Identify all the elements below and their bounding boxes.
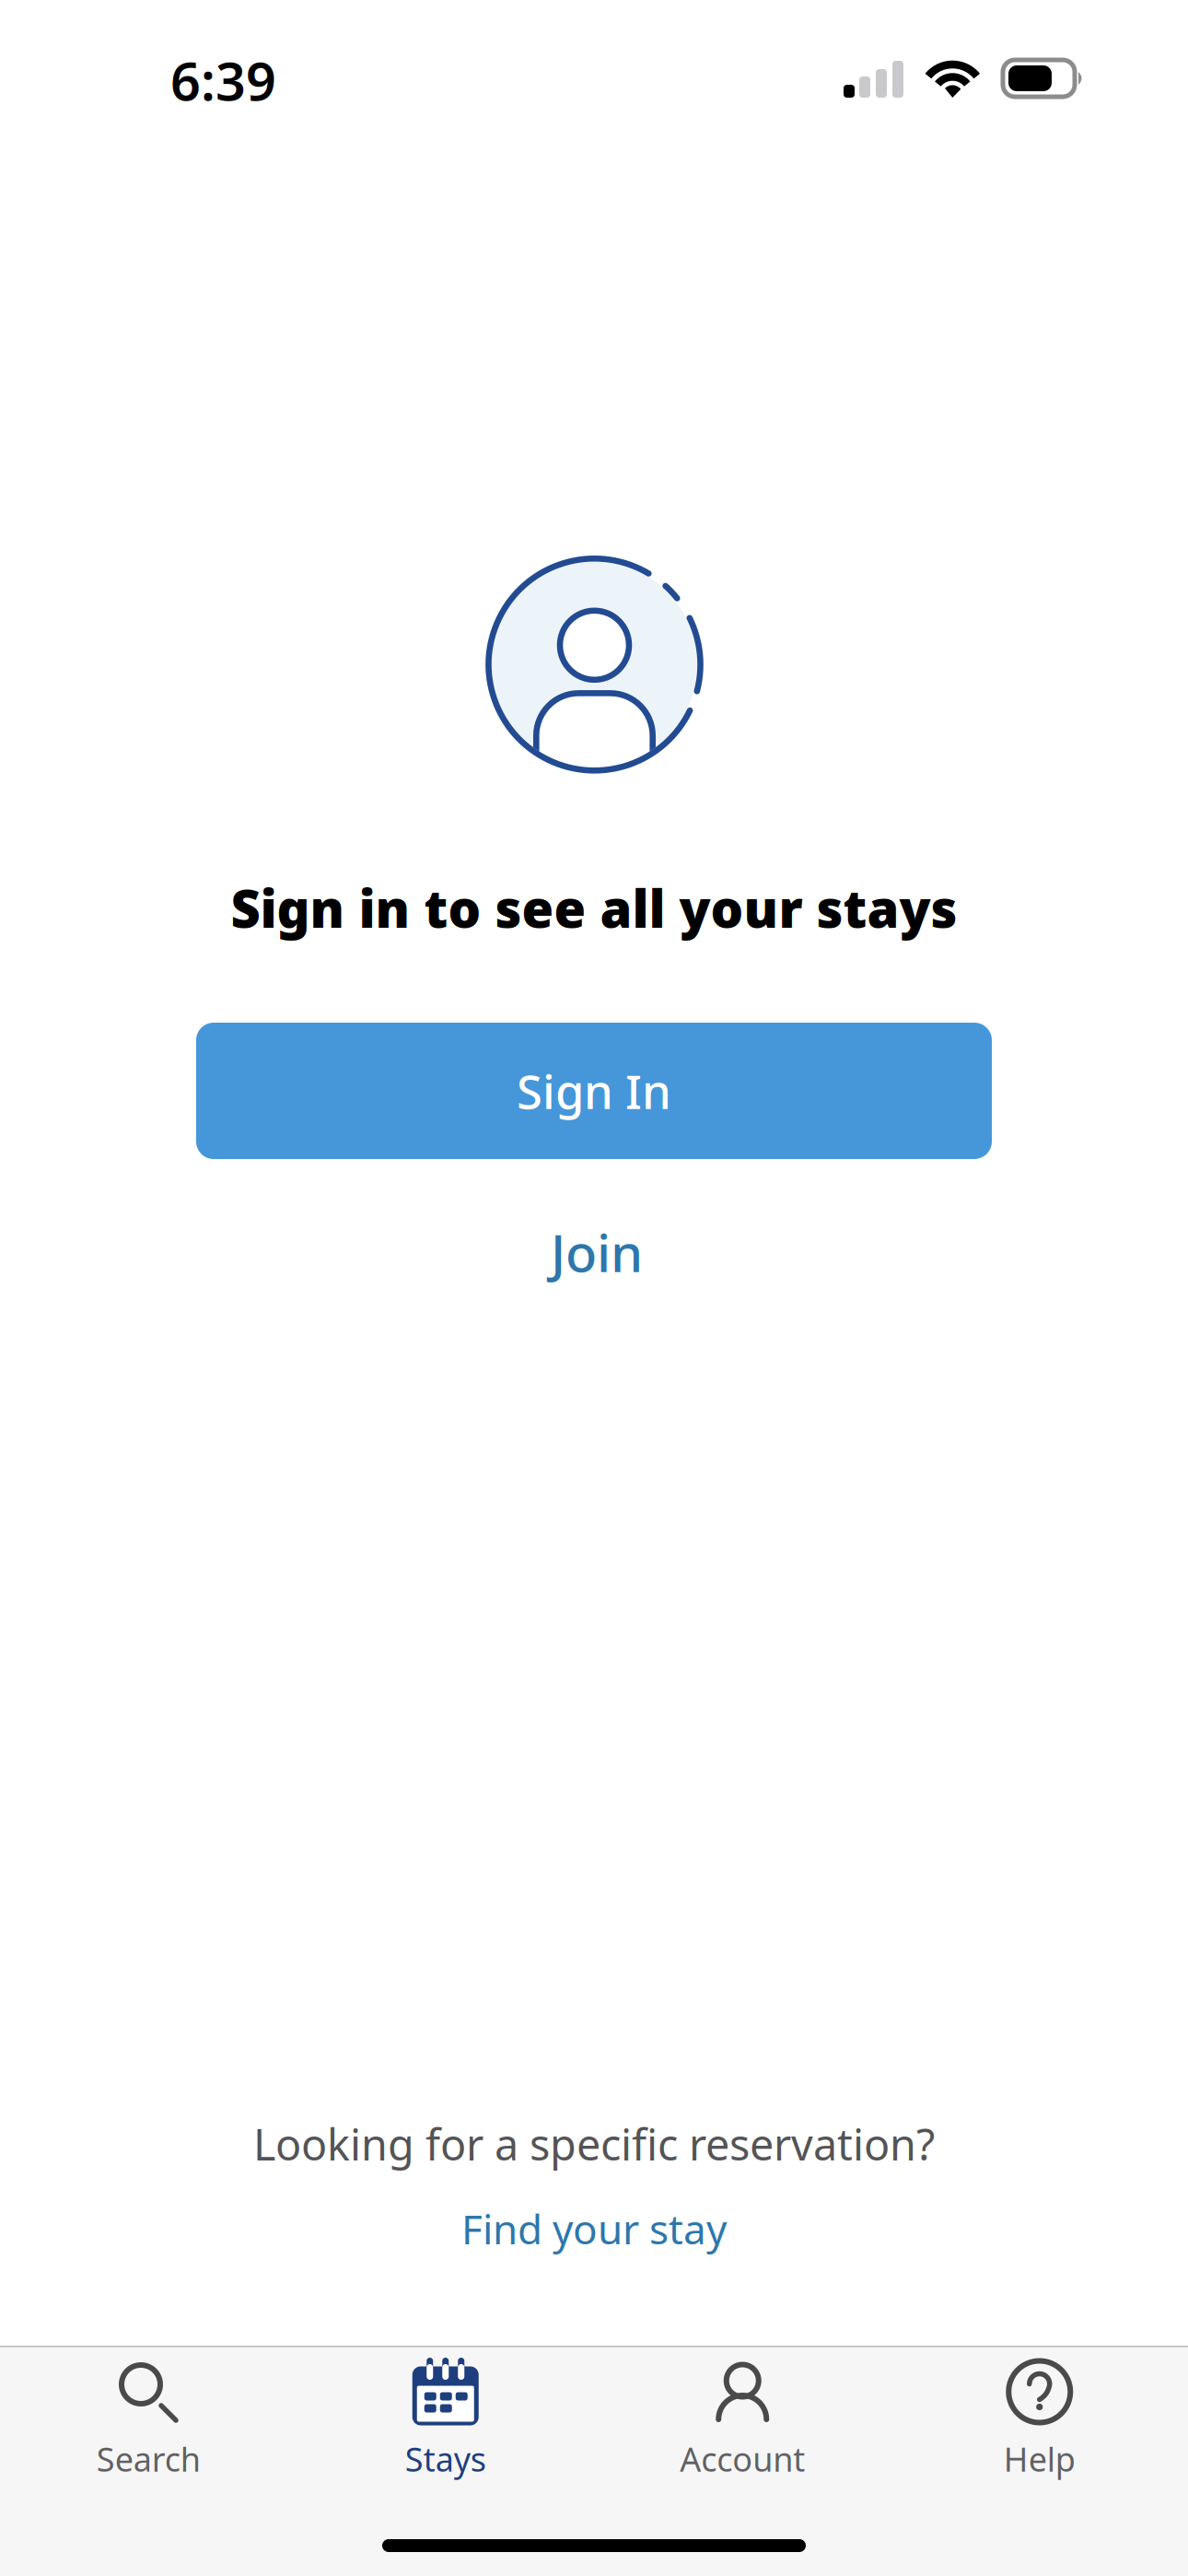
staticText: Sign in to see all your stays: [231, 873, 957, 942]
button[interactable]: Stays: [297, 2357, 594, 2486]
staticText: Looking for a specific reservation?: [253, 2115, 935, 2172]
staticText: Find your stay: [461, 2202, 727, 2256]
button[interactable]: Search: [0, 2357, 297, 2486]
staticText: 6:39: [170, 45, 276, 115]
button[interactable]: Help: [891, 2357, 1188, 2486]
staticText: Stays: [405, 2437, 486, 2481]
staticText: Join: [551, 1218, 643, 1286]
staticText: Account: [680, 2437, 805, 2481]
button[interactable]: Join: [459, 1206, 735, 1298]
staticText: Sign In: [517, 1060, 671, 1122]
button[interactable]: Sign In: [196, 1023, 992, 1159]
button[interactable]: Account: [594, 2357, 891, 2486]
button[interactable]: Find your stay: [364, 2189, 824, 2268]
staticText: Search: [97, 2437, 201, 2481]
staticText: Help: [1004, 2437, 1075, 2481]
